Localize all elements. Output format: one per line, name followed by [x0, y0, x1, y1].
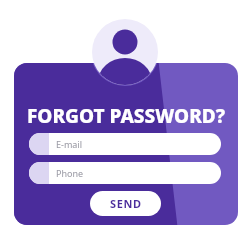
staticText: Phone	[56, 167, 84, 179]
button[interactable]: Phone	[29, 162, 221, 184]
staticText: FORGOT PASSWORD?	[14, 103, 238, 129]
button[interactable]: E-mail	[29, 133, 221, 155]
staticText: SEND	[110, 196, 142, 211]
staticText: E-mail	[56, 138, 83, 150]
button[interactable]: SEND	[90, 191, 161, 216]
